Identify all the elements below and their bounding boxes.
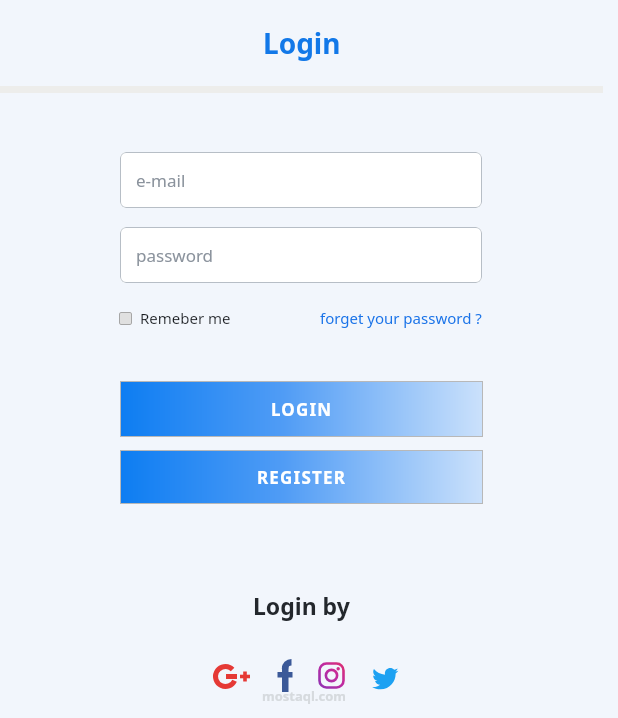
staticText: Login bbox=[263, 24, 341, 62]
staticText: LOGIN bbox=[271, 398, 333, 421]
button[interactable]: Remeber me bbox=[119, 308, 231, 328]
button[interactable] bbox=[318, 662, 345, 689]
staticText: REGISTER bbox=[257, 466, 347, 489]
staticText: Login by bbox=[253, 590, 350, 621]
staticText: Remeber me bbox=[140, 308, 231, 328]
staticText: password bbox=[136, 244, 214, 267]
staticText: e-mail bbox=[136, 169, 186, 192]
button[interactable]: REGISTER bbox=[120, 450, 483, 504]
button[interactable]: e-mail bbox=[120, 152, 482, 208]
button[interactable] bbox=[371, 665, 399, 689]
button[interactable]: LOGIN bbox=[120, 381, 483, 437]
button[interactable] bbox=[213, 664, 251, 690]
button[interactable]: forget your password ? bbox=[320, 308, 482, 328]
button[interactable]: password bbox=[120, 227, 482, 283]
button[interactable] bbox=[275, 659, 296, 692]
staticText: mostaql.com bbox=[262, 687, 347, 705]
